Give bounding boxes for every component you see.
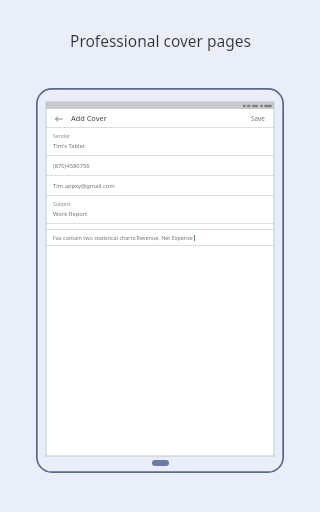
button[interactable]: Save: [249, 112, 267, 125]
button[interactable]: Fax contain two statistical charts:Reven…: [46, 230, 274, 245]
button[interactable]: Sender: [46, 128, 274, 156]
staticText: Fax contain two statistical charts:Reven…: [53, 234, 193, 241]
staticText: (870)4580756: [53, 162, 90, 170]
button[interactable]: Subject: [46, 196, 274, 224]
staticText: Tim.appxy@gmail.com: [53, 182, 115, 190]
button[interactable]: Home: [152, 460, 169, 466]
staticText: Professional cover pages: [70, 30, 251, 51]
staticText: Save: [251, 114, 265, 123]
staticText: Tim's Tablet: [53, 142, 85, 150]
staticText: Subject: [53, 200, 71, 207]
button[interactable]: Back: [53, 113, 64, 124]
staticText: Work Report: [53, 210, 88, 218]
button[interactable]: (870)4580756: [46, 156, 274, 176]
staticText: Sender: [53, 132, 71, 139]
button[interactable]: Tim.appxy@gmail.com: [46, 176, 274, 196]
staticText: Add Cover: [71, 113, 107, 123]
